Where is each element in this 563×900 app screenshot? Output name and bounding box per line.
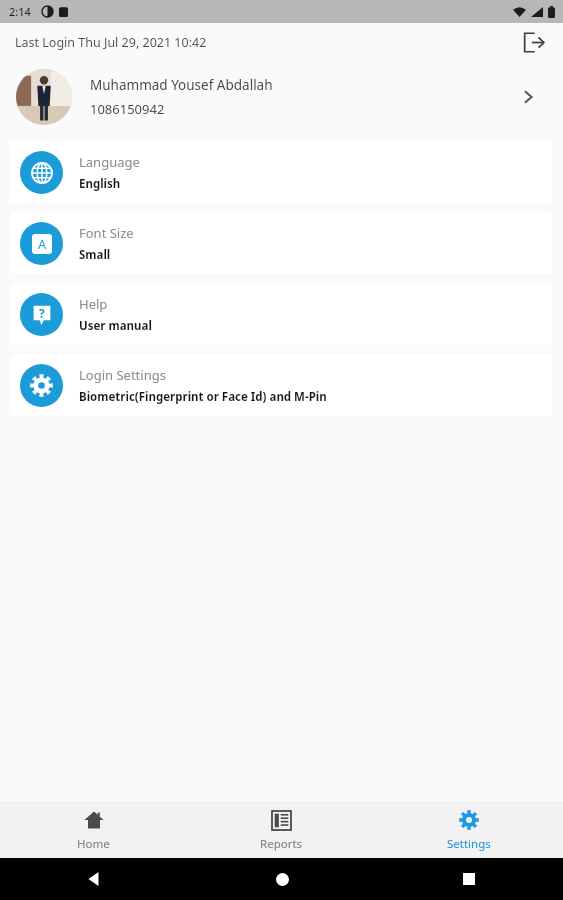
button[interactable]: Login Settings [11, 354, 552, 416]
staticText: 2:14 [9, 4, 31, 19]
button[interactable]: Muhammad Yousef Abdallah [0, 61, 563, 133]
button[interactable]: Home [0, 801, 187, 858]
staticText: Login Settings [79, 366, 166, 384]
button[interactable]: Language [11, 141, 552, 203]
button[interactable]: Open profile [507, 76, 549, 118]
staticText: A [38, 235, 47, 253]
button[interactable]: Home [264, 861, 300, 897]
button[interactable]: Recents [451, 861, 487, 897]
staticText: 1086150942 [90, 100, 165, 118]
staticText: Help [79, 295, 108, 313]
staticText: Muhammad Yousef Abdallah [90, 76, 273, 94]
button[interactable]: Reports [187, 801, 375, 858]
button[interactable]: Settings [375, 801, 563, 858]
staticText: ? [39, 305, 45, 321]
staticText: Last Login Thu Jul 29, 2021 10:42 [15, 34, 207, 51]
staticText: Language [79, 153, 140, 171]
button[interactable]: ? [11, 283, 552, 345]
button[interactable]: Logout [513, 23, 553, 61]
staticText: Font Size [79, 224, 134, 242]
button[interactable]: Back [76, 861, 112, 897]
staticText: User manual [79, 318, 152, 334]
staticText: Biometric(Fingerprint or Face Id) and M-… [79, 389, 327, 405]
staticText: Home [77, 836, 110, 852]
button[interactable]: A [11, 212, 552, 274]
staticText: Reports [260, 836, 303, 852]
staticText: English [79, 176, 121, 192]
staticText: Settings [447, 836, 491, 852]
staticText: Small [79, 247, 111, 263]
